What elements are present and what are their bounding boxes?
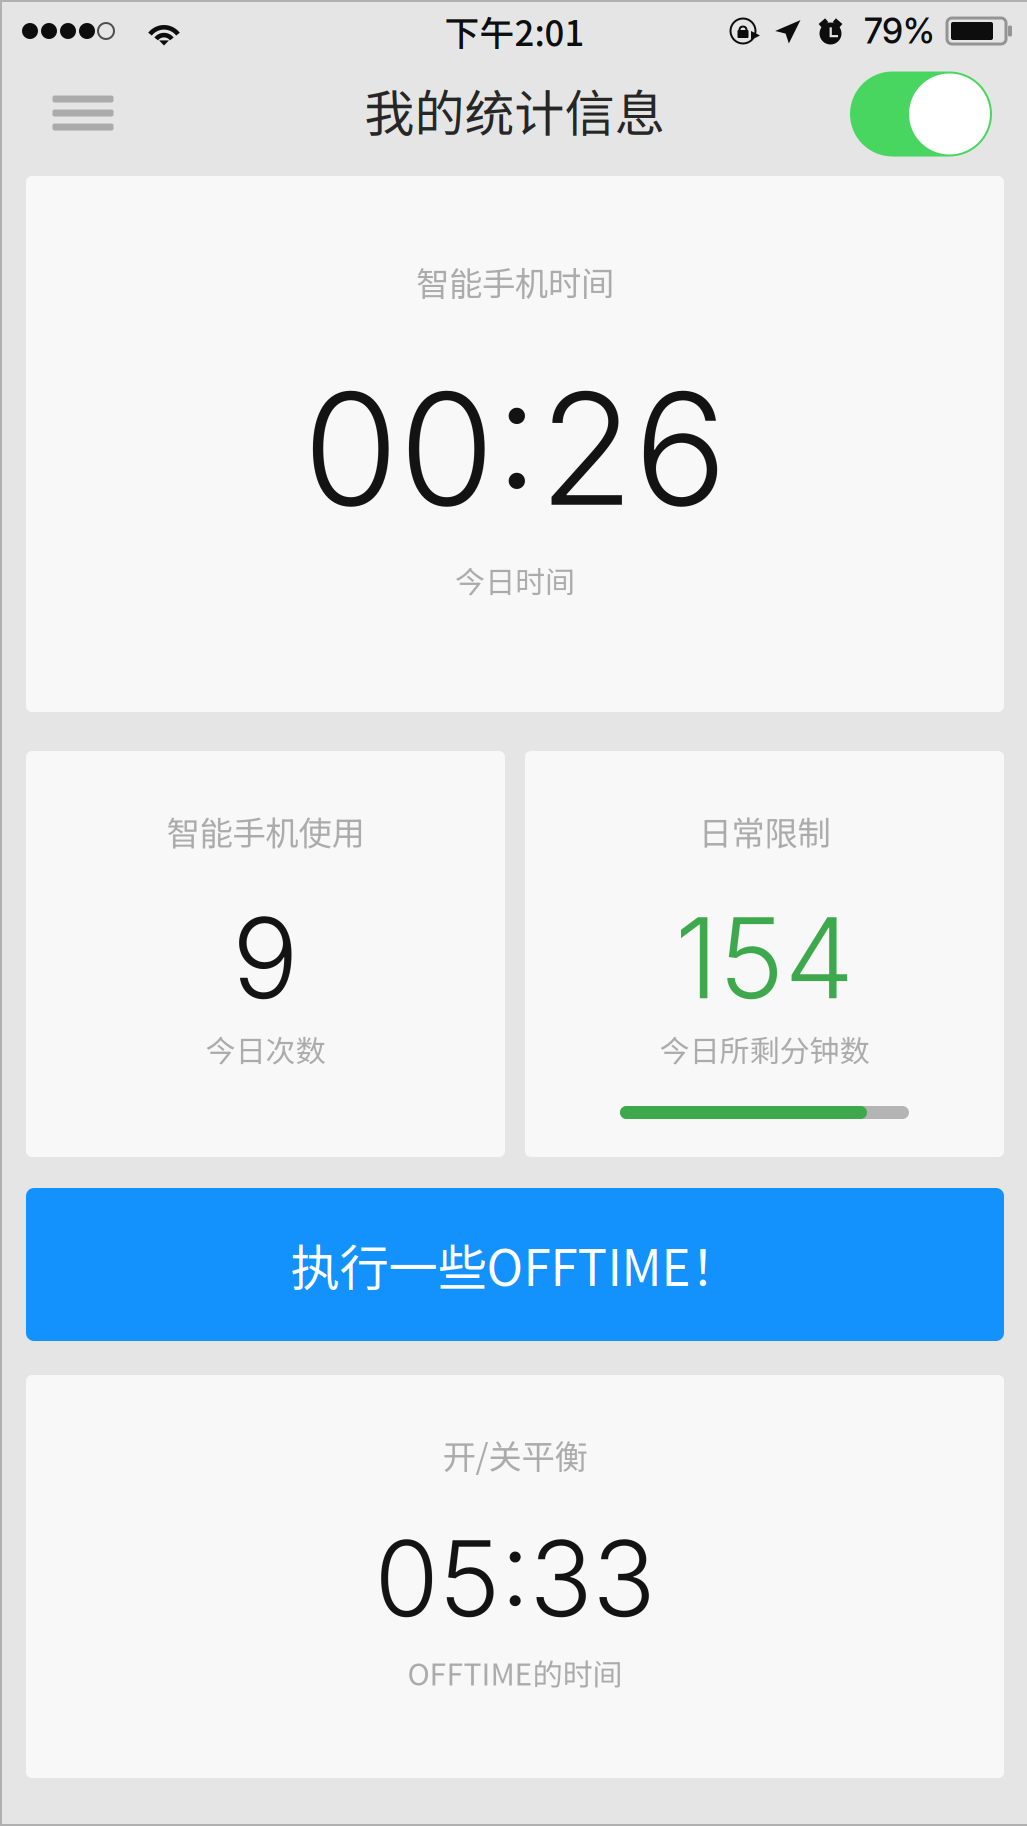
- staticText: 05:33: [374, 1516, 655, 1641]
- staticText: OFFTIME的时间: [407, 1651, 622, 1694]
- button[interactable]: Toggle Offtime: [837, 58, 1005, 177]
- staticText: 开/关平衡: [442, 1430, 587, 1479]
- staticText: 智能手机使用: [166, 807, 364, 855]
- staticText: 79%: [864, 10, 935, 52]
- staticText: 我的统计信息: [364, 74, 664, 146]
- staticText: 下午2:01: [444, 6, 584, 56]
- staticText: 00:26: [303, 355, 727, 542]
- staticText: 9: [232, 891, 299, 1025]
- button[interactable]: Menu: [24, 57, 142, 179]
- staticText: 今日次数: [205, 1027, 325, 1071]
- staticText: 智能手机时间: [416, 257, 614, 306]
- button[interactable]: 执行一些OFFTIME！: [26, 1188, 1004, 1341]
- staticText: 日常限制: [698, 807, 830, 855]
- staticText: 执行一些OFFTIME！: [290, 1229, 739, 1300]
- staticText: 154: [674, 891, 854, 1025]
- staticText: 今日所剩分钟数: [659, 1027, 869, 1071]
- staticText: 今日时间: [455, 558, 575, 602]
